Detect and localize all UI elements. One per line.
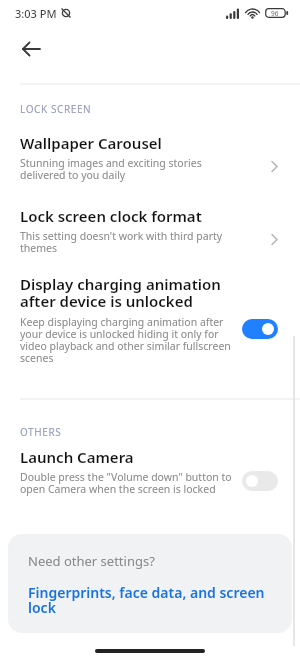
staticText: Lock screen clock format [20, 206, 202, 226]
staticText: OTHERS [20, 425, 62, 439]
staticText: Stunning images and exciting stories del… [20, 156, 202, 182]
button[interactable] [14, 32, 48, 66]
staticText: Double press the "Volume down" button to… [20, 470, 232, 496]
button[interactable]: Wallpaper Carousel [20, 133, 278, 182]
staticText: This setting doesn't work with third par… [20, 229, 223, 255]
button[interactable]: Launch Camera [20, 447, 278, 496]
button[interactable] [242, 471, 278, 491]
button[interactable] [242, 319, 278, 339]
button[interactable]: Lock screen clock format [20, 206, 278, 255]
staticText: Display charging animation after device … [20, 274, 221, 312]
staticText: Need other settings? [28, 552, 155, 570]
button[interactable]: Display charging animation after device … [20, 274, 278, 365]
staticText: Launch Camera [20, 447, 134, 467]
staticText: 3:03 PM [15, 6, 57, 21]
staticText: Keep displaying charging animation after… [20, 315, 231, 365]
button[interactable]: Need other settings? [8, 534, 292, 633]
staticText: Fingerprints, face data, and screen lock [28, 583, 265, 617]
staticText: 96 [271, 9, 279, 18]
staticText: LOCK SCREEN [20, 102, 92, 116]
staticText: Wallpaper Carousel [20, 133, 162, 153]
